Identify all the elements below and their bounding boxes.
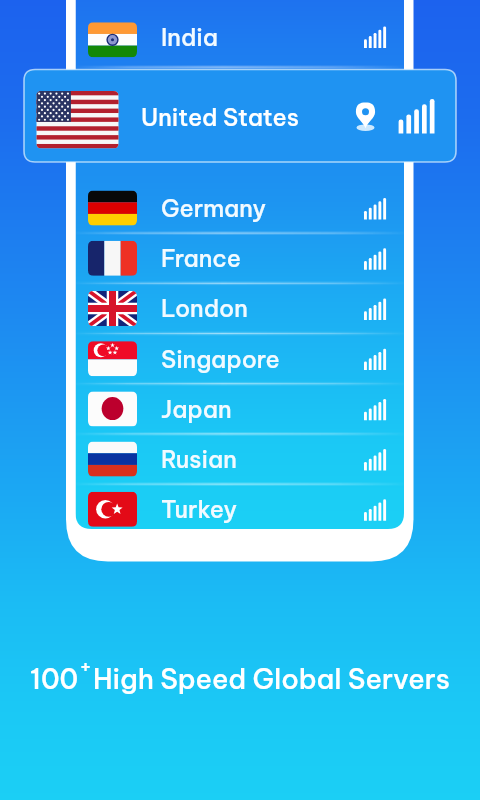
staticText: Rusian — [161, 444, 237, 474]
button[interactable]: France — [76, 233, 405, 283]
staticText: 100 — [30, 662, 79, 697]
button[interactable]: United States — [24, 70, 456, 163]
staticText: London — [161, 293, 248, 323]
staticText: + — [79, 653, 93, 680]
button[interactable]: Rusian — [76, 434, 405, 484]
button[interactable]: Germany — [76, 183, 405, 233]
button[interactable]: London — [76, 283, 405, 333]
staticText: India — [161, 22, 219, 52]
staticText: Japan — [161, 394, 232, 424]
staticText: Turkey — [161, 494, 238, 524]
staticText: Germany — [161, 193, 267, 223]
staticText: France — [161, 243, 242, 273]
staticText: High Speed Global Servers — [93, 662, 450, 697]
button[interactable]: Singapore — [76, 334, 405, 384]
button[interactable]: India — [76, 12, 405, 62]
staticText: Singapore — [161, 344, 280, 374]
staticText: United States — [141, 102, 299, 132]
button[interactable]: Turkey — [76, 484, 405, 534]
button[interactable]: Japan — [76, 384, 405, 434]
